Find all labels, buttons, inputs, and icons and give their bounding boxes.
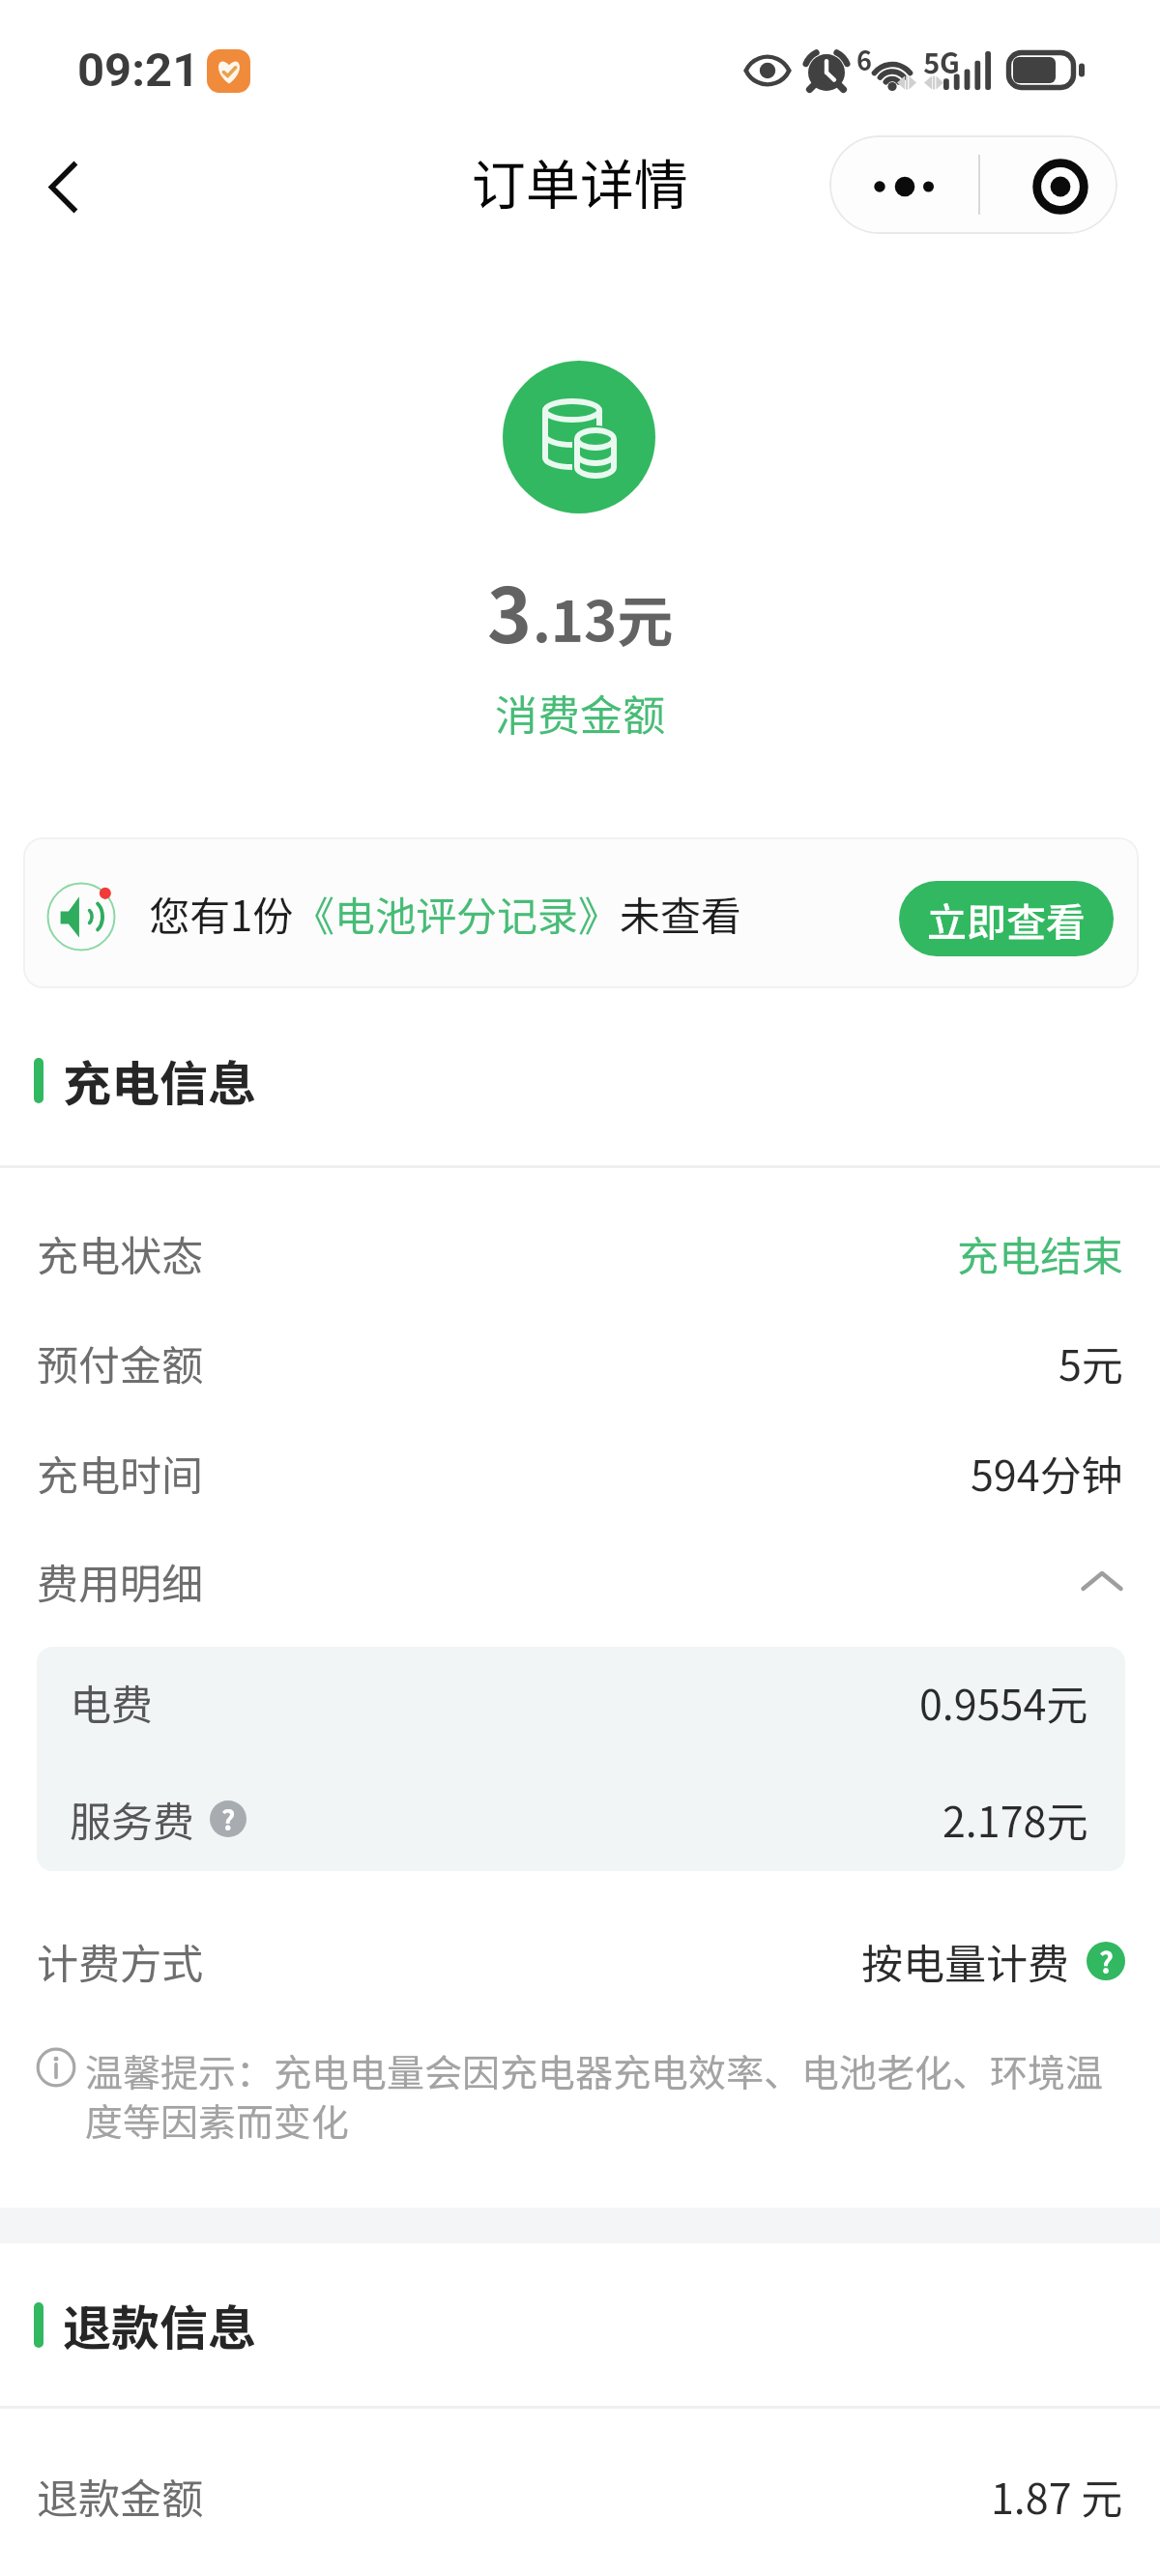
staticText: 未查看 bbox=[620, 884, 742, 943]
staticText: 充电信息 bbox=[63, 1045, 256, 1115]
button[interactable]: Billing method help bbox=[1087, 1942, 1125, 1980]
button[interactable]: 计费方式 bbox=[0, 1908, 1160, 2014]
staticText: 退款信息 bbox=[63, 2290, 256, 2359]
staticText: 立即查看 bbox=[927, 891, 1086, 948]
staticText: 计费方式 bbox=[37, 1931, 203, 1991]
staticText: 退款金额 bbox=[37, 2466, 203, 2526]
staticText: .13元 bbox=[533, 577, 674, 659]
staticText: 6 bbox=[856, 41, 872, 78]
staticText: 充电时间 bbox=[37, 1443, 203, 1503]
staticText: ? bbox=[221, 1800, 236, 1836]
staticText: 电费 bbox=[70, 1672, 153, 1732]
staticText: 0.9554元 bbox=[919, 1672, 1088, 1732]
staticText: 消费金额 bbox=[0, 682, 1160, 744]
staticText: 订单详情 bbox=[0, 142, 1160, 220]
button[interactable]: 退款金额 bbox=[0, 2441, 1160, 2551]
staticText: 充电结束 bbox=[957, 1223, 1123, 1283]
button[interactable]: Close mini program bbox=[992, 135, 1117, 234]
staticText: 预付金额 bbox=[37, 1332, 203, 1392]
staticText: 09:21 bbox=[77, 43, 200, 98]
staticText: 3 bbox=[487, 556, 533, 665]
staticText: 您有1份 bbox=[149, 884, 294, 943]
staticText: 5元 bbox=[1058, 1332, 1123, 1392]
button[interactable]: Service fee help bbox=[210, 1800, 246, 1837]
button[interactable]: 充电状态 bbox=[0, 1198, 1160, 1308]
staticText: ? bbox=[1099, 1942, 1114, 1979]
button[interactable]: More options bbox=[829, 135, 990, 234]
button[interactable]: Back bbox=[23, 145, 102, 228]
staticText: 费用明细 bbox=[37, 1551, 203, 1611]
button[interactable]: 预付金额 bbox=[0, 1307, 1160, 1418]
staticText: 充电状态 bbox=[37, 1223, 203, 1283]
staticText: 5G bbox=[923, 41, 960, 81]
staticText: 594分钟 bbox=[971, 1443, 1123, 1503]
button[interactable]: 您有1份 bbox=[23, 837, 1139, 988]
staticText: 按电量计费 bbox=[861, 1931, 1069, 1991]
button[interactable]: 充电时间 bbox=[0, 1418, 1160, 1528]
staticText: 温馨提示：充电电量会因充电器充电效率、电池老化、环境温度等因素而变化 bbox=[85, 2043, 1139, 2147]
staticText: 《电池评分记录》 bbox=[294, 884, 620, 943]
button[interactable]: 立即查看 bbox=[899, 881, 1114, 956]
button[interactable]: 费用明细 bbox=[0, 1526, 1160, 1636]
staticText: 服务费 bbox=[70, 1789, 194, 1849]
staticText: 1.87 元 bbox=[991, 2466, 1123, 2526]
staticText: 2.178元 bbox=[942, 1789, 1088, 1849]
